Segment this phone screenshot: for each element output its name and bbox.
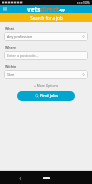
staticText: Within	[5, 64, 17, 69]
staticText: 5km	[7, 72, 15, 77]
staticText: Search for a job	[30, 15, 63, 21]
staticText: Where	[5, 45, 16, 50]
staticText: .app	[59, 8, 65, 12]
button[interactable]: Home	[41, 175, 51, 181]
button[interactable]: Enter a postcode...	[4, 51, 88, 60]
button[interactable]: Find jobs	[17, 91, 75, 101]
button[interactable]: Back	[17, 175, 23, 181]
staticText: vetsdirect	[27, 5, 59, 13]
staticText: Find jobs	[40, 93, 58, 99]
staticText: Enter a postcode...	[7, 53, 39, 58]
staticText: + More Options	[34, 83, 58, 87]
staticText: What	[5, 26, 14, 31]
button[interactable]: Any profession	[4, 32, 88, 41]
staticText: 100%	[83, 1, 90, 5]
button[interactable]: Open navigation menu	[2, 6, 8, 12]
staticText: Any profession	[7, 34, 33, 39]
button[interactable]: + More Options	[0, 83, 92, 87]
button[interactable]: 5km	[4, 70, 88, 79]
